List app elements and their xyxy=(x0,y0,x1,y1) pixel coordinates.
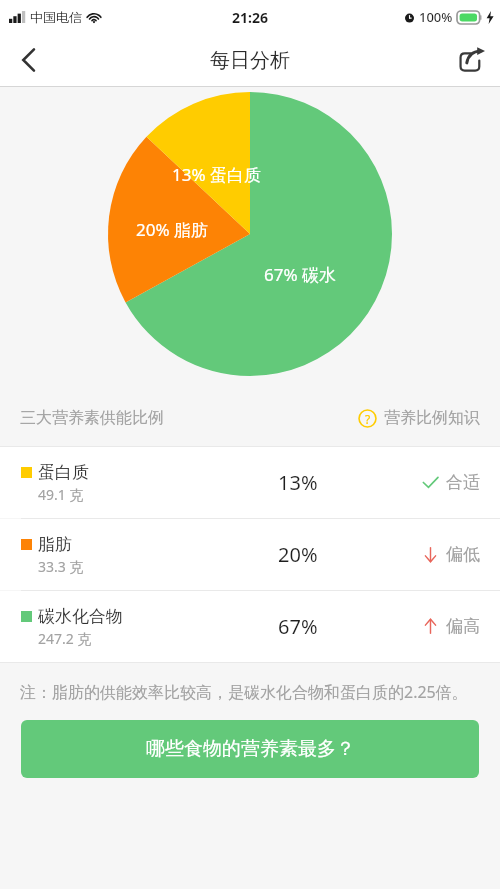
staticText: 脂肪 xyxy=(38,534,72,555)
staticText: 中国电信 xyxy=(30,9,82,25)
staticText: 每日分析 xyxy=(210,48,290,73)
staticText: ? xyxy=(365,411,371,427)
button[interactable]: 蛋白质 xyxy=(0,447,500,518)
button[interactable]: ? xyxy=(358,408,480,428)
staticText: 碳水化合物 xyxy=(38,606,123,627)
staticText: 13% 蛋白质 xyxy=(172,163,261,186)
staticText: 247.2 克 xyxy=(38,629,92,648)
button[interactable]: 碳水化合物 xyxy=(0,591,500,662)
staticText: 100% xyxy=(419,8,453,26)
staticText: 20% 脂肪 xyxy=(136,218,208,241)
staticText: 21:26 xyxy=(232,8,268,27)
button[interactable]: 哪些食物的营养素最多？ xyxy=(21,720,479,778)
staticText: 20% xyxy=(278,541,318,568)
staticText: 三大营养素供能比例 xyxy=(20,408,164,428)
staticText: 33.3 克 xyxy=(38,557,84,576)
staticText: 注：脂肪的供能效率比较高，是碳水化合物和蛋白质的2.25倍。 xyxy=(20,681,480,703)
staticText: 蛋白质 xyxy=(38,462,89,483)
button[interactable]: Share xyxy=(444,34,500,86)
staticText: 67% xyxy=(278,613,318,640)
staticText: 合适 xyxy=(446,472,480,493)
staticText: 营养比例知识 xyxy=(384,408,480,428)
button[interactable]: 脂肪 xyxy=(0,519,500,590)
staticText: 67% 碳水 xyxy=(264,263,336,286)
staticText: 13% xyxy=(278,469,318,496)
staticText: 49.1 克 xyxy=(38,485,84,504)
staticText: 哪些食物的营养素最多？ xyxy=(146,737,355,761)
staticText: 偏高 xyxy=(446,616,480,637)
staticText: 偏低 xyxy=(446,544,480,565)
button[interactable]: Back xyxy=(0,34,56,86)
